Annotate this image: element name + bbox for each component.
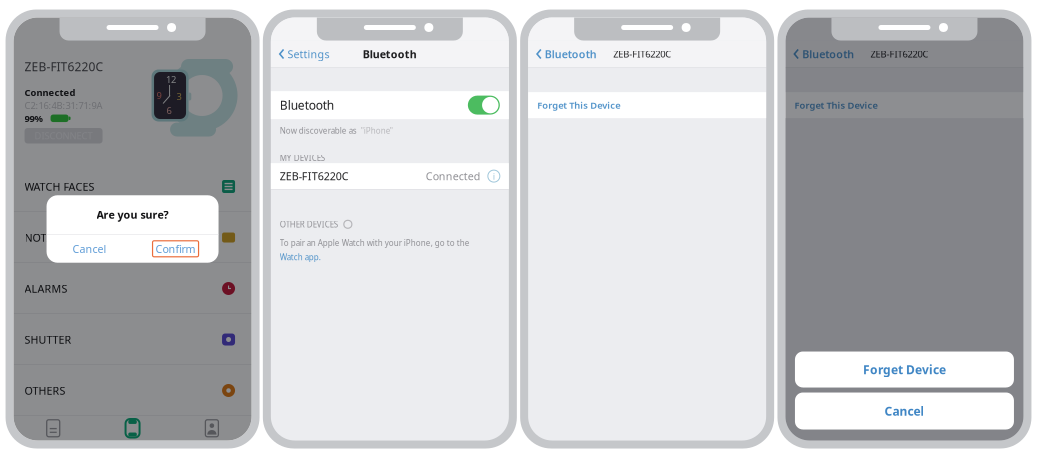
button[interactable]: OTHERS bbox=[13, 365, 251, 416]
button[interactable]: Watch app. bbox=[280, 252, 321, 262]
staticText: Cancel bbox=[72, 242, 106, 256]
button[interactable]: Forget This Device bbox=[785, 92, 1023, 118]
staticText: 9 bbox=[156, 89, 161, 102]
button[interactable]: Forget Device bbox=[795, 351, 1014, 387]
staticText: OTHERS bbox=[24, 383, 65, 398]
staticText: Forget Device bbox=[863, 361, 946, 377]
staticText: Watch app. bbox=[280, 252, 321, 262]
staticText: 12 bbox=[166, 73, 176, 86]
staticText: i bbox=[493, 170, 495, 182]
button[interactable]: Bluetooth bbox=[528, 43, 597, 65]
staticText: ALARMS bbox=[24, 281, 67, 296]
staticText: ZEB-FIT6220C bbox=[870, 48, 928, 60]
staticText: Bluetooth bbox=[363, 47, 417, 61]
staticText: ZEB-FIT6220C bbox=[280, 169, 349, 183]
button[interactable]: Records bbox=[13, 416, 93, 441]
button[interactable]: NOTIFICATIONS bbox=[13, 212, 251, 263]
staticText: Settings bbox=[287, 47, 329, 61]
button[interactable]: Confirm bbox=[132, 235, 218, 263]
button[interactable]: Cancel bbox=[795, 392, 1014, 429]
staticText: SHUTTER bbox=[24, 332, 71, 347]
staticText: Bluetooth bbox=[545, 47, 597, 61]
staticText: WATCH FACES bbox=[24, 179, 94, 194]
staticText: Now discoverable as bbox=[280, 125, 357, 136]
staticText: Connected bbox=[24, 86, 75, 98]
staticText: To pair an Apple Watch with your iPhone,… bbox=[280, 238, 470, 248]
button[interactable]: ZEB-FIT6220C bbox=[271, 163, 509, 189]
staticText: Forget This Device bbox=[794, 99, 877, 111]
button[interactable]: SHUTTER bbox=[13, 314, 251, 365]
staticText: "iPhone" bbox=[357, 125, 393, 136]
staticText: MY DEVICES bbox=[280, 152, 325, 163]
staticText: Forget This Device bbox=[537, 99, 620, 111]
staticText: NOTIFICATIONS bbox=[24, 230, 105, 245]
staticText: ZEB-FIT6220C bbox=[24, 59, 103, 74]
button[interactable]: Cancel bbox=[46, 235, 132, 263]
button[interactable]: Bluetooth toggle bbox=[468, 96, 500, 115]
staticText: ZEB-FIT6220C bbox=[613, 48, 671, 60]
staticText: OTHER DEVICES bbox=[280, 219, 338, 230]
button[interactable]: Bluetooth bbox=[785, 43, 854, 65]
staticText: Bluetooth bbox=[802, 47, 854, 61]
staticText: 3 bbox=[176, 90, 181, 103]
staticText: 99% bbox=[24, 112, 42, 124]
button[interactable]: DISCONNECT bbox=[24, 128, 102, 143]
staticText: Bluetooth bbox=[280, 97, 334, 113]
staticText: C2:16:4B:31:71:9A bbox=[24, 99, 102, 111]
button[interactable]: Device bbox=[93, 416, 172, 441]
button[interactable]: Forget This Device bbox=[528, 92, 766, 118]
button[interactable]: Settings bbox=[271, 43, 329, 65]
staticText: Cancel bbox=[884, 403, 924, 419]
staticText: Connected bbox=[426, 169, 481, 183]
staticText: Confirm bbox=[155, 242, 195, 256]
staticText: 6 bbox=[166, 104, 171, 117]
button[interactable]: Profile bbox=[172, 416, 251, 441]
staticText: Are you sure? bbox=[96, 208, 168, 222]
button[interactable]: ALARMS bbox=[13, 263, 251, 314]
button[interactable]: WATCH FACES bbox=[13, 161, 251, 212]
